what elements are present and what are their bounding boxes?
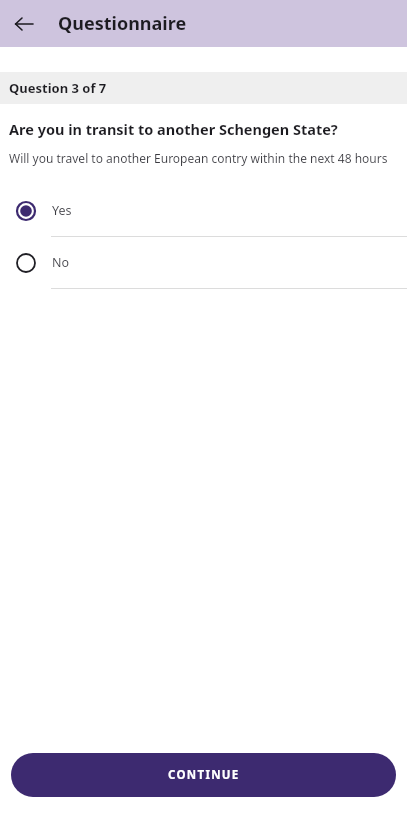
staticText: Yes [52,202,72,219]
staticText: Are you in transit to another Schengen S… [9,119,338,139]
staticText: No [52,254,70,271]
button[interactable]: Back [10,10,38,38]
staticText: CONTINUE [168,767,240,783]
button[interactable]: CONTINUE [11,753,396,797]
staticText: Question 3 of 7 [9,79,107,97]
staticText: Will you travel to another European cont… [9,150,388,166]
button[interactable]: Yes [0,185,407,237]
button[interactable]: No [0,237,407,289]
staticText: Questionnaire [58,11,187,36]
